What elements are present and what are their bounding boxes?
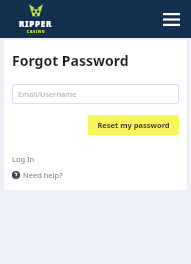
button[interactable]: Ripper Casino home bbox=[19, 4, 53, 34]
button[interactable]: Reset my password bbox=[88, 115, 179, 135]
staticText: Reset my password bbox=[97, 120, 170, 130]
staticText: RIPPER bbox=[19, 18, 53, 29]
staticText: Email/Username bbox=[18, 89, 77, 99]
staticText: Log In bbox=[12, 154, 35, 164]
button[interactable]: Need help? bbox=[12, 170, 63, 180]
staticText: Forgot Password bbox=[12, 51, 129, 70]
button[interactable]: Log In bbox=[12, 154, 35, 164]
staticText: CASINO bbox=[27, 29, 46, 34]
button[interactable]: Email/Username bbox=[12, 84, 179, 104]
staticText: Need help? bbox=[23, 170, 63, 180]
button[interactable]: Open menu bbox=[160, 8, 182, 30]
